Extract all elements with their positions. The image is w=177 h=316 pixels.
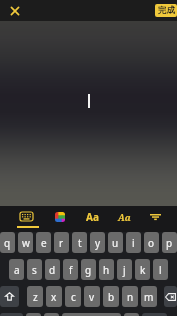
button[interactable]: h <box>99 259 114 280</box>
staticText: y <box>95 236 101 250</box>
staticText: x <box>51 290 57 304</box>
button[interactable]: 完成 <box>155 4 177 17</box>
staticText: z <box>33 290 38 304</box>
staticText: o <box>148 236 155 250</box>
button[interactable] <box>142 313 167 316</box>
button[interactable]: p <box>162 232 177 253</box>
button[interactable] <box>124 313 139 316</box>
button[interactable] <box>62 313 121 316</box>
staticText: a <box>14 263 20 277</box>
staticText: v <box>89 290 95 304</box>
button[interactable]: Backspace <box>164 286 177 307</box>
button[interactable]: x <box>46 286 62 307</box>
button[interactable]: Close <box>6 2 23 19</box>
staticText: l <box>159 263 162 277</box>
button[interactable]: g <box>81 259 96 280</box>
staticText: g <box>85 263 92 277</box>
button[interactable]: f <box>63 259 78 280</box>
staticText: Aa <box>86 210 99 224</box>
staticText: c <box>71 290 76 304</box>
button[interactable]: b <box>103 286 119 307</box>
staticText: t <box>78 236 82 250</box>
button[interactable]: e <box>36 232 51 253</box>
button[interactable]: w <box>18 232 33 253</box>
staticText: e <box>41 236 47 250</box>
staticText: s <box>32 263 37 277</box>
button[interactable]: q <box>0 232 15 253</box>
button[interactable]: Font <box>113 207 135 226</box>
button[interactable]: m <box>141 286 157 307</box>
button[interactable] <box>26 313 41 316</box>
staticText: b <box>108 290 115 304</box>
staticText: d <box>49 263 56 277</box>
staticText: w <box>22 236 30 250</box>
staticText: j <box>123 263 126 277</box>
button[interactable]: d <box>45 259 60 280</box>
button[interactable]: v <box>84 286 100 307</box>
button[interactable]: Shift <box>0 286 19 307</box>
button[interactable]: k <box>135 259 150 280</box>
button[interactable] <box>44 313 59 316</box>
button[interactable]: o <box>144 232 159 253</box>
staticText: r <box>59 236 64 250</box>
staticText: n <box>127 290 134 304</box>
staticText: Aa <box>118 211 131 223</box>
button[interactable]: l <box>153 259 168 280</box>
button[interactable]: Keyboard <box>14 207 39 226</box>
button[interactable]: Text size <box>81 207 103 226</box>
staticText: p <box>166 236 173 250</box>
staticText: q <box>4 236 11 250</box>
button[interactable]: z <box>27 286 43 307</box>
button[interactable]: t <box>72 232 87 253</box>
staticText: 完成 <box>158 5 175 16</box>
button[interactable]: Colour <box>49 207 71 226</box>
staticText: m <box>144 290 154 304</box>
button[interactable]: r <box>54 232 69 253</box>
button[interactable]: j <box>117 259 132 280</box>
staticText: f <box>69 263 73 277</box>
button[interactable]: i <box>126 232 141 253</box>
staticText: h <box>103 263 110 277</box>
button[interactable]: a <box>9 259 24 280</box>
staticText: i <box>132 236 135 250</box>
button[interactable]: Alignment <box>144 207 166 226</box>
staticText: k <box>140 263 146 277</box>
button[interactable]: s <box>27 259 42 280</box>
button[interactable]: y <box>90 232 105 253</box>
button[interactable]: u <box>108 232 123 253</box>
staticText: u <box>112 236 119 250</box>
button[interactable]: n <box>122 286 138 307</box>
button[interactable]: c <box>65 286 81 307</box>
button[interactable] <box>0 313 23 316</box>
